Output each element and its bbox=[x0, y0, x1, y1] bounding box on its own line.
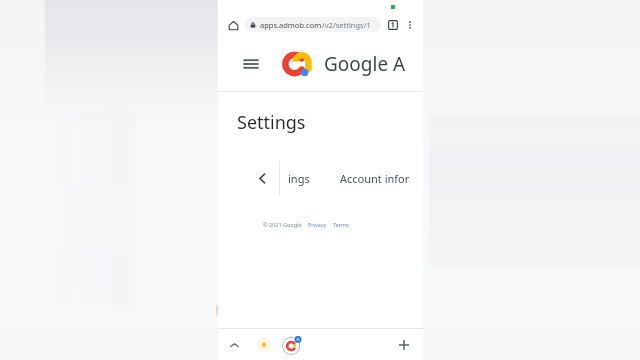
button[interactable]: Privacy bbox=[308, 221, 327, 228]
button[interactable]: Open navigation menu bbox=[240, 53, 262, 75]
staticText: Privacy bbox=[308, 221, 327, 228]
staticText: © 2021 Google bbox=[263, 221, 302, 228]
staticText: /v2/settings/1 bbox=[322, 20, 371, 30]
staticText: Settings bbox=[237, 110, 306, 135]
button[interactable]: Current tab bbox=[282, 335, 302, 355]
button[interactable]: Expand bbox=[226, 337, 242, 353]
staticText: Google A bbox=[324, 51, 406, 77]
button[interactable]: Tabs bbox=[385, 17, 401, 33]
button[interactable]: apps.admob.com bbox=[245, 17, 381, 32]
button[interactable]: New tab bbox=[395, 336, 413, 354]
button[interactable]: Account infor bbox=[310, 161, 410, 195]
button[interactable]: Home bbox=[224, 16, 242, 34]
button[interactable]: More options bbox=[403, 18, 417, 32]
staticText: apps.admob.com bbox=[260, 20, 322, 30]
staticText: Terms bbox=[333, 221, 349, 228]
button[interactable]: Scroll tabs left bbox=[251, 167, 273, 189]
button[interactable]: Terms bbox=[333, 221, 349, 228]
staticText: Account infor bbox=[340, 171, 410, 186]
button[interactable]: ings bbox=[280, 161, 310, 195]
button[interactable]: Recent tab bbox=[256, 337, 272, 353]
staticText: ings bbox=[288, 171, 310, 186]
